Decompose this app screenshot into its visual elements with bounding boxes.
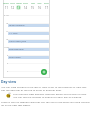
button[interactable]: Retrospective <box>8 48 49 51</box>
button[interactable]: 1:1 sync <box>8 32 49 35</box>
button[interactable]: TUE <box>9 0 15 13</box>
staticText: 13 <box>17 6 21 10</box>
button[interactable]: SAT <box>36 0 43 13</box>
staticText: You can see the number of events for eac… <box>13 95 82 98</box>
staticText: Team meeting <box>9 24 25 27</box>
button[interactable]: Lunch with John <box>8 40 49 43</box>
staticText: 11 <box>5 6 9 10</box>
staticText: SAT <box>37 1 42 4</box>
staticText: This monthly view displays calendar even… <box>13 92 87 95</box>
button[interactable]: THU <box>22 0 29 13</box>
staticText: TUE <box>10 1 15 4</box>
staticText: 4 <box>7 70 9 73</box>
other: Note <box>5 92 12 99</box>
staticText: SUN <box>44 1 49 4</box>
staticText: 1 PM <box>4 46 9 49</box>
button[interactable]: Sprint plan <box>8 56 49 59</box>
staticText: WED <box>16 1 22 4</box>
button[interactable]: WED <box>15 0 22 13</box>
staticText: Lunch with John <box>9 40 27 43</box>
staticText: 2 <box>7 54 9 57</box>
staticText: 16 <box>38 6 42 10</box>
staticText: 10 <box>6 22 9 25</box>
button[interactable]: SUN <box>43 0 50 13</box>
staticText: Sprint plan <box>9 56 21 59</box>
staticText: 11 <box>6 30 9 33</box>
staticText: 1:1 sync <box>9 32 18 35</box>
staticText: Retrospective <box>9 48 24 51</box>
staticText: 3 <box>7 62 9 65</box>
staticText: 12 <box>11 6 15 10</box>
staticText: MON <box>3 1 9 4</box>
staticText: 14 <box>24 6 28 10</box>
staticText: You can slide screens to the left or rig… <box>1 85 90 91</box>
staticText: 12 <box>6 38 9 41</box>
staticText: Day view <box>1 79 17 84</box>
staticText: THU <box>23 1 28 4</box>
staticText: 15 <box>31 6 35 10</box>
staticText: 17 <box>45 6 49 10</box>
staticText: There is also an agenda view that you ca… <box>1 100 90 106</box>
staticText: 9 AM <box>4 14 9 17</box>
button[interactable]: Add event <box>41 69 47 75</box>
button[interactable]: FRI <box>29 0 36 13</box>
staticText: FRI <box>31 1 35 4</box>
button[interactable]: MON <box>3 0 9 13</box>
button[interactable]: Team meeting <box>8 24 49 27</box>
